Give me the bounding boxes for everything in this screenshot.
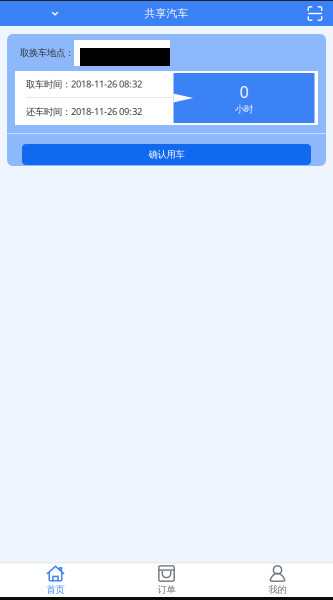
staticText: 还车时间：2018-11-26 09:32 bbox=[26, 105, 142, 118]
staticText: 我的 bbox=[268, 584, 286, 595]
button[interactable]: 首页 bbox=[0, 563, 111, 597]
button[interactable]: Scan QR code bbox=[298, 1, 332, 26]
staticText: 共享汽车 bbox=[144, 7, 188, 20]
staticText: 订单 bbox=[157, 584, 175, 595]
staticText: 小时 bbox=[235, 103, 253, 115]
button[interactable]: Collapse bbox=[36, 1, 74, 26]
staticText: 首页 bbox=[46, 584, 64, 595]
staticText: 确认用车 bbox=[148, 149, 184, 160]
staticText: 取换车地点： bbox=[20, 47, 74, 59]
staticText: 取车时间：2018-11-26 08:32 bbox=[26, 78, 142, 90]
button[interactable]: 确认用车 bbox=[22, 144, 311, 165]
button[interactable]: 订单 bbox=[111, 563, 222, 597]
button[interactable]: 我的 bbox=[222, 563, 333, 597]
staticText: 0 bbox=[239, 81, 248, 102]
